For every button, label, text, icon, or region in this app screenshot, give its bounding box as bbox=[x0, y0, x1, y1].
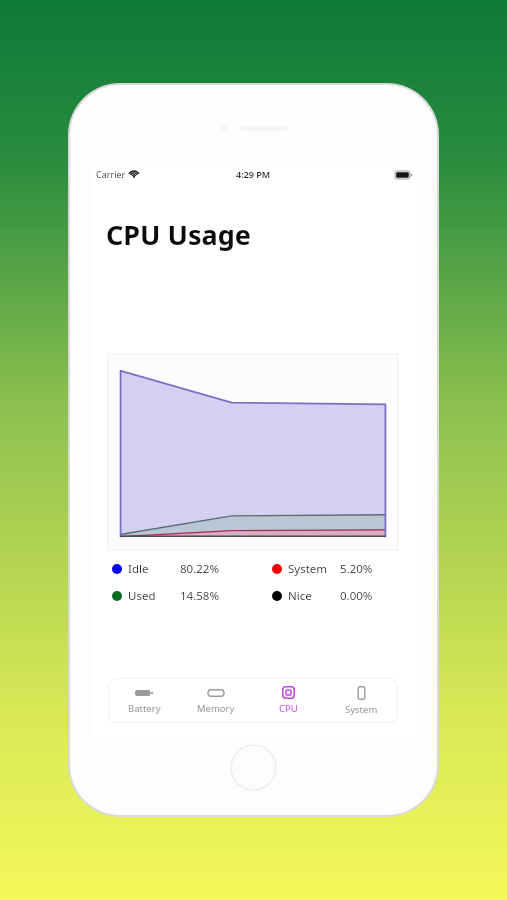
button[interactable]: System bbox=[325, 678, 398, 723]
staticText: Memory bbox=[197, 702, 235, 715]
staticText: Used bbox=[128, 588, 156, 604]
staticText: Idle bbox=[128, 561, 149, 577]
button[interactable]: Used bbox=[112, 588, 251, 604]
staticText: 80.22% bbox=[180, 561, 219, 577]
button[interactable]: CPU bbox=[252, 678, 325, 723]
staticText: System bbox=[288, 561, 328, 577]
button[interactable]: Memory bbox=[180, 678, 252, 723]
staticText: Carrier bbox=[96, 168, 126, 180]
staticText: 5.20% bbox=[340, 561, 373, 577]
staticText: CPU Usage bbox=[106, 216, 251, 253]
staticText: System bbox=[345, 703, 378, 716]
staticText: 14.58% bbox=[180, 588, 219, 604]
staticText: Battery bbox=[128, 702, 161, 715]
staticText: Nice bbox=[288, 588, 312, 604]
button[interactable]: System bbox=[272, 561, 401, 577]
staticText: CPU bbox=[279, 702, 298, 715]
button[interactable]: Nice bbox=[272, 588, 401, 604]
staticText: 0.00% bbox=[340, 588, 373, 604]
button[interactable]: Idle bbox=[112, 561, 251, 577]
button[interactable]: Battery bbox=[108, 678, 180, 723]
staticText: 4:29 PM bbox=[236, 168, 271, 180]
